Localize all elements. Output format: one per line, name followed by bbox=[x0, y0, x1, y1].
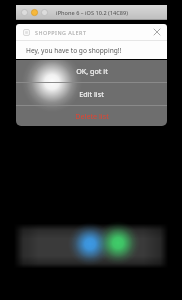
button[interactable]: Delete list bbox=[16, 106, 167, 126]
button[interactable]: Close bbox=[151, 26, 163, 38]
staticText: Delete list bbox=[75, 111, 109, 121]
staticText: Edit list bbox=[79, 89, 104, 99]
button[interactable]: Window control bbox=[31, 9, 38, 16]
button[interactable]: Window control bbox=[21, 9, 28, 16]
staticText: iPhone 6 – iOS 10.2 (14C89) bbox=[56, 9, 128, 17]
button[interactable]: Window control bbox=[41, 9, 48, 16]
button[interactable]: OK, got it bbox=[16, 60, 167, 82]
staticText: Hey, you have to go shopping!! bbox=[26, 46, 122, 55]
staticText: OK, got it bbox=[76, 66, 108, 76]
staticText: SHOPPING ALERT bbox=[35, 29, 87, 36]
button[interactable]: Edit list bbox=[16, 83, 167, 105]
